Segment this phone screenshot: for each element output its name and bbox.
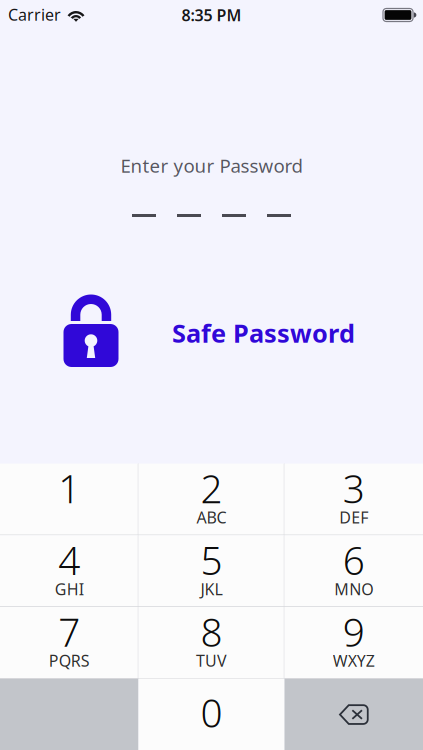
staticText: 3	[343, 463, 365, 514]
staticText: PQRS	[49, 650, 90, 671]
button[interactable]: 4	[0, 535, 138, 607]
staticText: 5	[200, 534, 222, 586]
staticText: MNO	[334, 578, 373, 599]
button[interactable]: 3	[284, 464, 423, 535]
staticText: 0	[200, 687, 222, 738]
button[interactable]: 5	[138, 535, 284, 607]
staticText: 9	[343, 606, 365, 657]
staticText: DEF	[339, 507, 368, 528]
staticText: Safe Password	[172, 316, 355, 350]
staticText: WXYZ	[333, 650, 375, 671]
staticText: Enter your Password	[120, 153, 302, 178]
button[interactable]: 2	[138, 464, 284, 535]
staticText: 1	[58, 463, 80, 514]
staticText: 6	[343, 534, 365, 586]
staticText: 2	[200, 463, 222, 514]
staticText: GHI	[55, 578, 84, 599]
button[interactable]: 9	[284, 607, 423, 679]
button[interactable]: Delete	[284, 679, 423, 750]
button[interactable]: 8	[138, 607, 284, 679]
staticText: JKL	[200, 578, 222, 599]
button[interactable]: 1	[0, 464, 138, 535]
button[interactable]: 7	[0, 607, 138, 679]
staticText: 4	[58, 534, 80, 586]
button[interactable]: 0	[138, 679, 284, 750]
staticText: 8	[200, 606, 222, 657]
staticText: Carrier	[8, 4, 61, 25]
staticText: TUV	[196, 650, 227, 671]
staticText: ABC	[196, 507, 226, 528]
button[interactable]: 6	[284, 535, 423, 607]
staticText: 8:35 PM	[181, 4, 241, 26]
staticText: 7	[58, 606, 80, 657]
